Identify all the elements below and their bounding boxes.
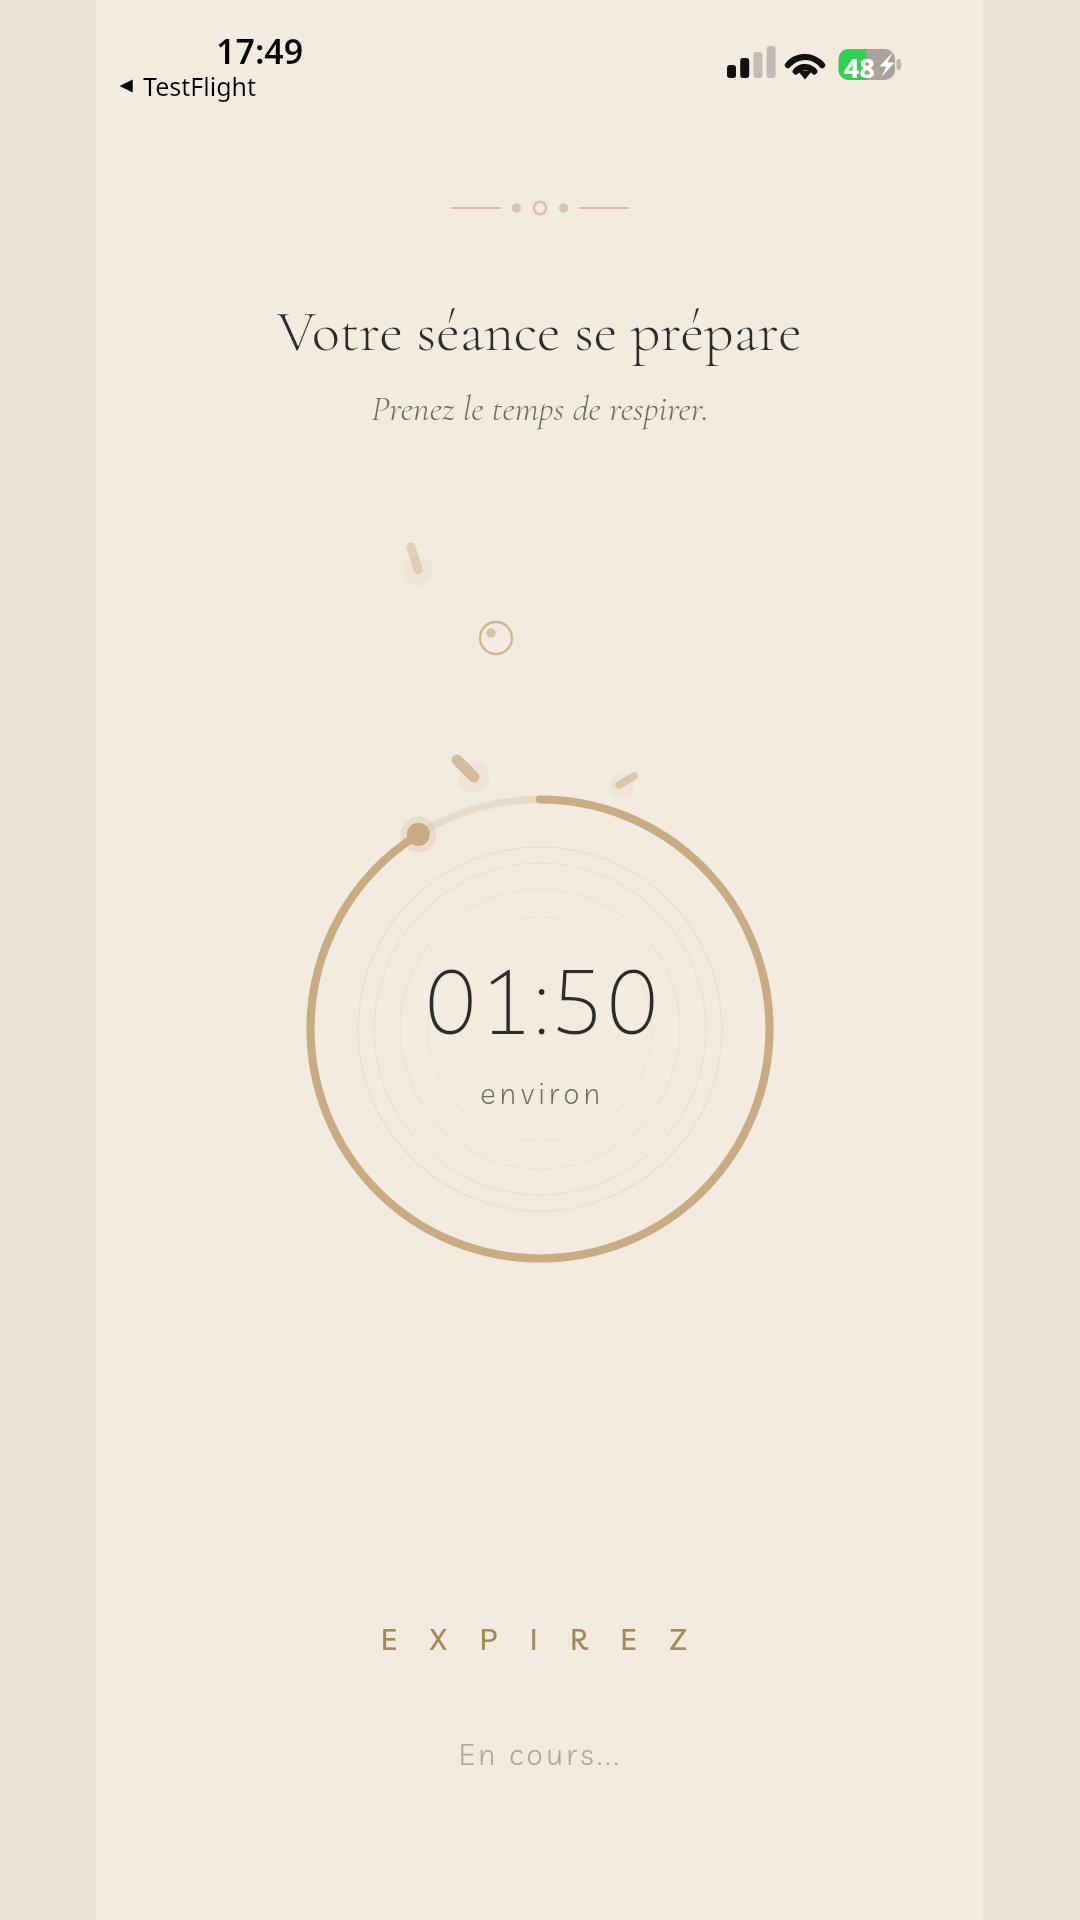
staticText: Votre séance se prépare (277, 296, 802, 366)
button[interactable]: TestFlight (114, 64, 260, 108)
staticText: En cours... (459, 1735, 623, 1772)
staticText: EXPIREZ (381, 1621, 720, 1657)
staticText: 17:49 (216, 28, 304, 74)
staticText: TestFlight (143, 69, 256, 103)
button[interactable]: Pause session (299, 788, 782, 1271)
staticText: environ (480, 1075, 605, 1111)
staticText: Prenez le temps de respirer. (371, 387, 709, 431)
staticText: 01:50 (424, 945, 662, 1057)
staticText: 48 (844, 49, 875, 86)
